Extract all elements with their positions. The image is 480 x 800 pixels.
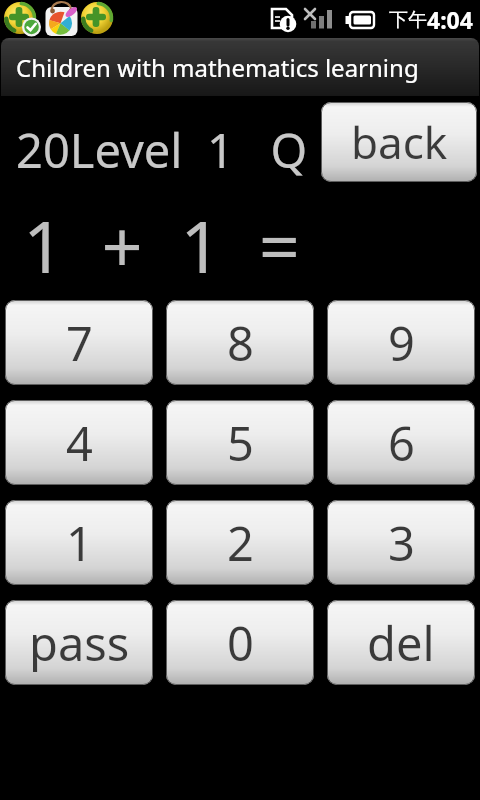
button[interactable]: 7 bbox=[5, 300, 153, 385]
staticText: back bbox=[351, 112, 448, 172]
button[interactable]: del bbox=[327, 600, 475, 685]
staticText: del bbox=[367, 611, 435, 675]
staticText: 5 bbox=[227, 411, 254, 475]
button[interactable]: 3 bbox=[327, 500, 475, 585]
staticText: 0 bbox=[227, 611, 254, 675]
staticText: 3 bbox=[388, 511, 415, 575]
button[interactable]: back bbox=[321, 102, 477, 182]
staticText: 9 bbox=[388, 311, 415, 375]
button[interactable]: 8 bbox=[166, 300, 314, 385]
staticText: 7 bbox=[66, 311, 93, 375]
button[interactable]: 2 bbox=[166, 500, 314, 585]
staticText: 20Level 1 Q bbox=[16, 118, 308, 182]
button[interactable]: 1 bbox=[5, 500, 153, 585]
staticText: 2 bbox=[227, 511, 254, 575]
staticText: pass bbox=[29, 611, 130, 675]
staticText: 4:04 bbox=[427, 4, 473, 35]
button[interactable]: 6 bbox=[327, 400, 475, 485]
staticText: 8 bbox=[227, 311, 254, 375]
staticText: 1 bbox=[66, 511, 93, 575]
staticText: 下午 bbox=[389, 8, 427, 32]
staticText: 4 bbox=[66, 411, 93, 475]
button[interactable]: 9 bbox=[327, 300, 475, 385]
button[interactable]: 5 bbox=[166, 400, 314, 485]
button[interactable]: 0 bbox=[166, 600, 314, 685]
staticText: 1 + 1 = bbox=[23, 196, 301, 294]
button[interactable]: pass bbox=[5, 600, 153, 685]
staticText: 6 bbox=[388, 411, 415, 475]
button[interactable]: 4 bbox=[5, 400, 153, 485]
staticText: Children with mathematics learning bbox=[16, 51, 419, 84]
